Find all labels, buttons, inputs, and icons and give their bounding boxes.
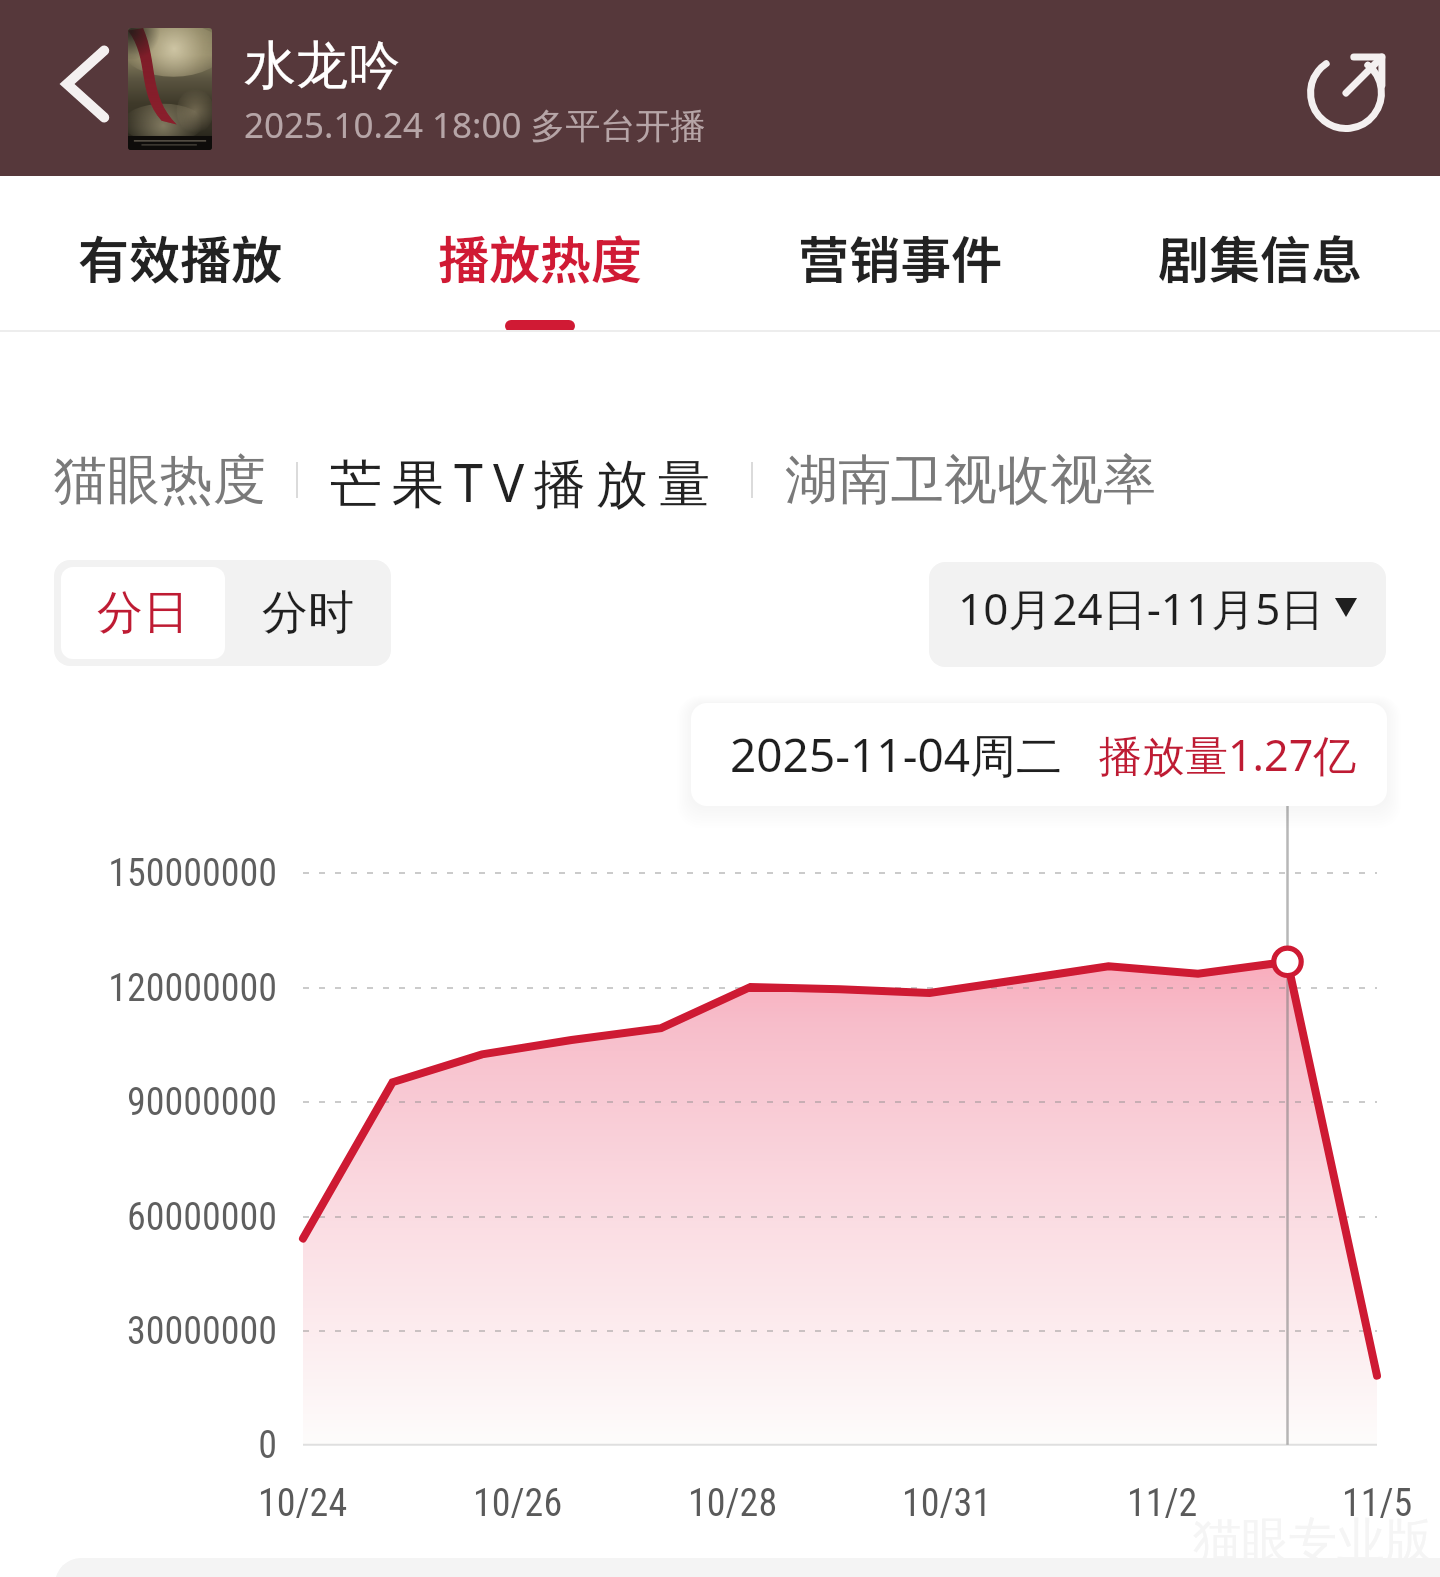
staticText: 120000000 — [108, 966, 277, 1011]
staticText: 播放热度 — [438, 220, 643, 294]
staticText: 10/31 — [902, 1481, 992, 1526]
staticText: 猫眼热度 — [54, 447, 266, 514]
button[interactable]: 剧集信息 — [1080, 176, 1440, 330]
staticText: 2025.10.24 18:00 多平台开播 — [244, 101, 706, 149]
staticText: 10/26 — [473, 1481, 563, 1526]
button[interactable]: 芒果TV播放量 — [330, 440, 721, 520]
button[interactable]: 营销事件 — [720, 176, 1080, 330]
staticText: 60000000 — [126, 1195, 277, 1240]
staticText: 11/5 — [1342, 1481, 1413, 1526]
staticText: 猫眼专业版 — [1193, 1511, 1433, 1571]
button[interactable]: 猫眼热度 — [54, 441, 266, 520]
staticText: 10月24日-11月5日 — [958, 578, 1325, 638]
staticText: 播放量1.27亿 — [1099, 725, 1357, 784]
staticText: 10/24 — [258, 1481, 348, 1526]
staticText: 湖南卫视收视率 — [785, 447, 1156, 514]
staticText: 分日 — [97, 584, 189, 642]
staticText: 分时 — [262, 584, 354, 642]
button[interactable]: 分时 — [225, 560, 391, 666]
staticText: 有效播放 — [78, 220, 283, 294]
staticText: 0 — [258, 1423, 277, 1468]
button[interactable]: 10月24日-11月5日 — [929, 562, 1386, 667]
staticText: 剧集信息 — [1158, 220, 1363, 294]
button[interactable]: 湖南卫视收视率 — [785, 441, 1156, 520]
button[interactable]: 播放热度 — [360, 176, 720, 330]
button[interactable]: 有效播放 — [0, 176, 360, 330]
button[interactable]: Share — [1290, 37, 1402, 149]
staticText: 营销事件 — [798, 220, 1003, 294]
staticText: 150000000 — [108, 851, 277, 896]
staticText: 11/2 — [1127, 1481, 1198, 1526]
staticText: 2025-11-04周二 — [730, 723, 1063, 786]
staticText: 90000000 — [126, 1080, 277, 1125]
button[interactable]: 分日 — [61, 567, 225, 659]
button[interactable]: Back — [36, 34, 136, 134]
staticText: 30000000 — [126, 1309, 277, 1354]
staticText: 水龙吟 — [244, 33, 400, 99]
staticText: 10/28 — [688, 1481, 778, 1526]
staticText: 芒果TV播放量 — [330, 446, 721, 514]
